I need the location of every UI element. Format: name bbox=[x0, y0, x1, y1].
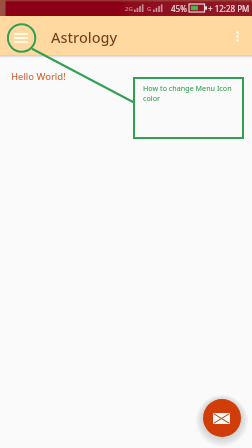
staticText: Astrology bbox=[51, 27, 118, 47]
button[interactable]: Open navigation menu bbox=[0, 17, 38, 55]
staticText: How to change Menu Icon color bbox=[143, 83, 237, 104]
staticText: Hello World! bbox=[11, 70, 66, 83]
button[interactable]: Compose email bbox=[203, 399, 241, 437]
staticText: G bbox=[147, 5, 152, 13]
staticText: + 12:28 PM bbox=[208, 3, 250, 14]
staticText: 45% bbox=[171, 3, 187, 14]
staticText: 2G bbox=[125, 5, 133, 13]
button[interactable]: More options bbox=[224, 22, 252, 50]
